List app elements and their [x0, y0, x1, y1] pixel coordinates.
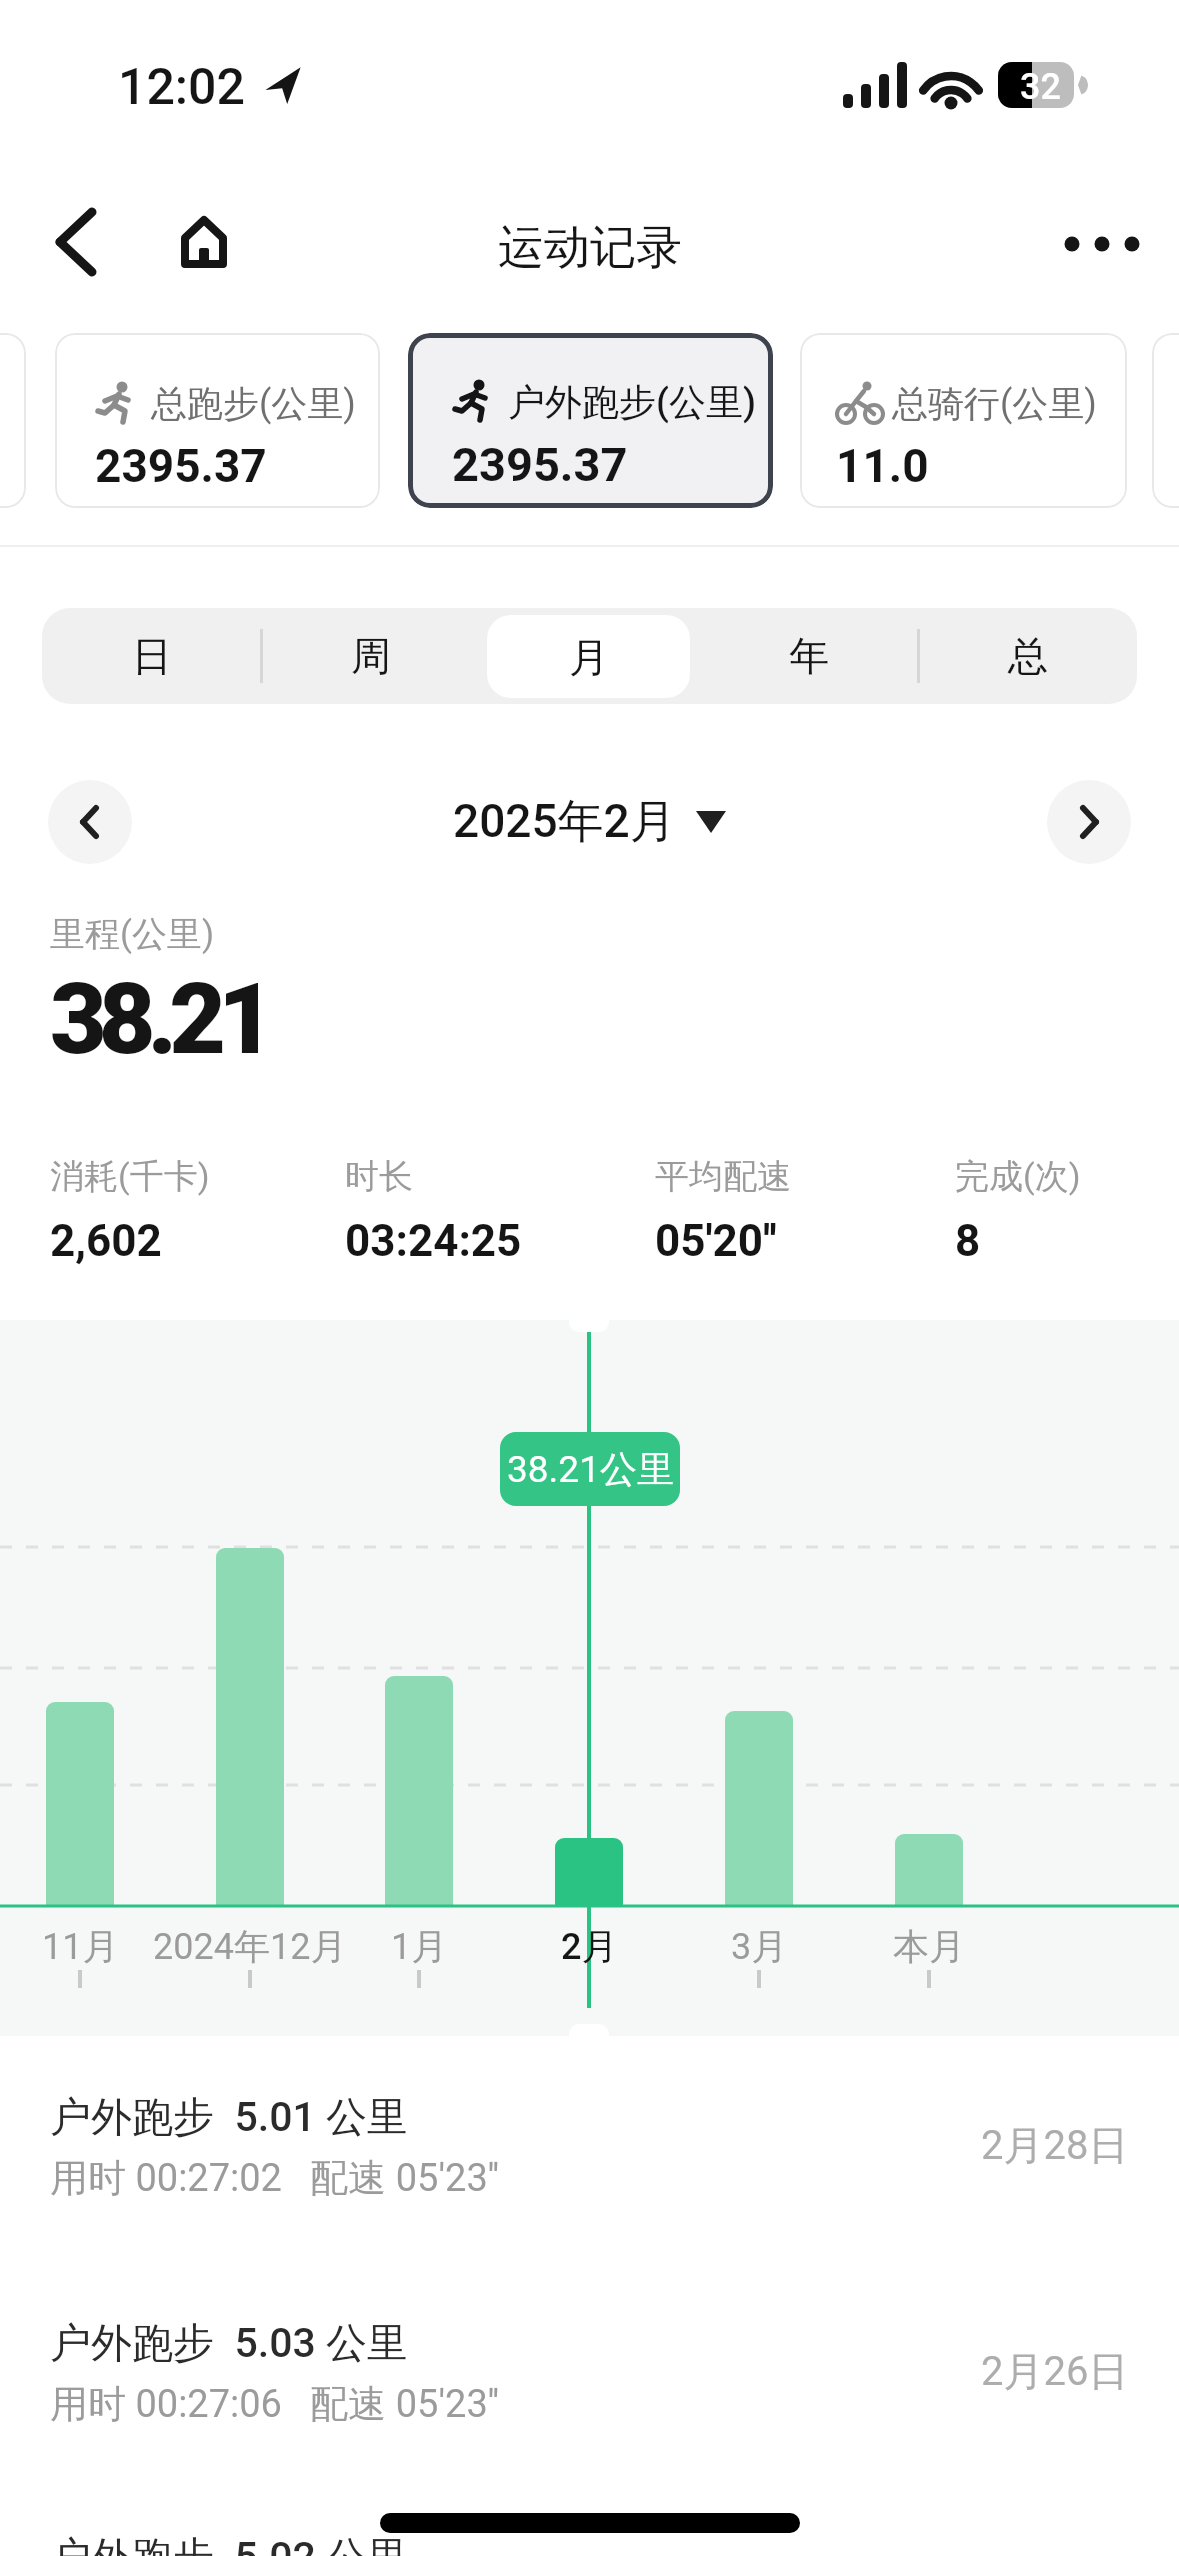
staticText: 时长 — [345, 1155, 413, 1198]
button[interactable]: 总骑行(公里) — [800, 333, 1127, 508]
staticText: 38.21公里 — [507, 1446, 674, 1493]
staticText: 1月 — [391, 1924, 448, 1969]
button[interactable]: 总 — [918, 608, 1137, 704]
button[interactable]: 户外跑步(公里) — [408, 333, 773, 508]
staticText: 3月 — [731, 1924, 788, 1969]
staticText: 用时 00:27:02 配速 05'23'' — [50, 2154, 500, 2202]
button[interactable]: 月 — [487, 615, 690, 698]
button[interactable]: 户外跑步 5.01 公里 — [0, 2082, 1179, 2242]
staticText: 周 — [351, 631, 391, 681]
staticText: 用时 00:27:06 配速 05'23'' — [50, 2380, 500, 2428]
staticText: 完成(次) — [955, 1155, 1081, 1198]
staticText: 消耗(千卡) — [50, 1155, 210, 1198]
staticText: 本月 — [893, 1924, 965, 1969]
staticText: 2,602 — [50, 1215, 162, 1267]
staticText: 年 — [789, 631, 829, 681]
staticText: 日 — [132, 631, 172, 681]
button[interactable]: 户外跑步 5.02 公里 — [0, 2522, 1179, 2556]
staticText: 2月 — [561, 1924, 618, 1969]
staticText: 11月 — [42, 1924, 119, 1969]
staticText: 2024年12月 — [153, 1924, 347, 1969]
staticText: 户外跑步(公里) — [508, 379, 756, 426]
staticText: 8 — [955, 1215, 981, 1267]
button[interactable]: 日 — [42, 608, 261, 704]
staticText: 05'20'' — [655, 1215, 777, 1267]
button[interactable]: 2025年2月 — [0, 780, 1179, 864]
staticText: 户外跑步 5.03 公里 — [50, 2318, 408, 2370]
staticText: 11.0 — [836, 439, 929, 493]
staticText: 总 — [1008, 631, 1048, 681]
staticText: 2395.37 — [452, 437, 628, 492]
staticText: 月 — [569, 632, 609, 682]
button[interactable] — [48, 780, 132, 864]
staticText: 03:24:25 — [345, 1215, 522, 1267]
button[interactable]: 户外跑步 5.03 公里 — [0, 2308, 1179, 2468]
staticText: 平均配速 — [655, 1155, 791, 1198]
button[interactable] — [1047, 780, 1131, 864]
staticText: 38.21 — [50, 962, 267, 1077]
staticText: 总骑行(公里) — [892, 381, 1097, 426]
staticText: 2395.37 — [95, 439, 267, 493]
staticText: 2月28日 — [981, 2120, 1129, 2170]
button[interactable]: 年 — [699, 608, 918, 704]
staticText: 户外跑步 5.02 公里 — [50, 2532, 408, 2556]
staticText: 运动记录 — [498, 219, 682, 277]
button[interactable]: 总跑步(公里) — [55, 333, 380, 508]
staticText: 里程(公里) — [50, 912, 215, 956]
button[interactable] — [1052, 214, 1152, 274]
staticText: 2月26日 — [981, 2346, 1129, 2396]
button[interactable]: 周 — [261, 608, 480, 704]
staticText: 2025年2月 — [453, 793, 676, 851]
staticText: 总跑步(公里) — [151, 381, 356, 426]
button[interactable] — [40, 200, 120, 284]
staticText: 12:02 — [118, 58, 245, 117]
staticText: 户外跑步 5.01 公里 — [50, 2092, 408, 2144]
staticText: 32 — [1020, 66, 1061, 108]
button[interactable] — [176, 212, 240, 280]
